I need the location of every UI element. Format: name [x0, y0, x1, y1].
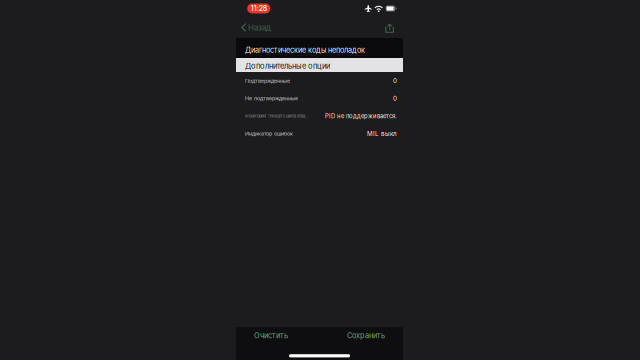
button[interactable]: Не подтвержденные [236, 90, 403, 107]
button[interactable]: Назад [236, 19, 277, 36]
button[interactable]: Дополнительные опции [236, 58, 403, 72]
staticText: Очистить [254, 331, 288, 340]
staticText: MIL выкл [367, 130, 397, 137]
staticText: Не подтвержденные [245, 95, 298, 102]
staticText: 0 [393, 77, 397, 85]
staticText: Назад [248, 23, 271, 32]
button[interactable]: Мониторинг текущего цикла упра… [236, 107, 403, 125]
staticText: Дополнительные опции [245, 61, 330, 71]
button[interactable]: Диагностические коды неполадок [236, 38, 403, 58]
staticText: 0 [393, 95, 397, 102]
staticText: Мониторинг текущего цикла упра… [245, 114, 308, 118]
staticText: PID не поддерживается. [325, 112, 397, 120]
button[interactable]: Сохранить [340, 327, 392, 344]
button[interactable]: Подтвержденные [236, 72, 403, 90]
staticText: Сохранить [347, 331, 385, 340]
button[interactable]: Поделиться [379, 18, 400, 37]
staticText: Индикатор ошибок [245, 130, 293, 137]
staticText: 11:28 [251, 4, 267, 13]
button[interactable]: Индикатор ошибок [236, 125, 403, 142]
staticText: Подтвержденные [245, 78, 290, 84]
button[interactable]: Очистить [247, 327, 295, 344]
staticText: Диагностические коды неполадок [245, 46, 365, 54]
